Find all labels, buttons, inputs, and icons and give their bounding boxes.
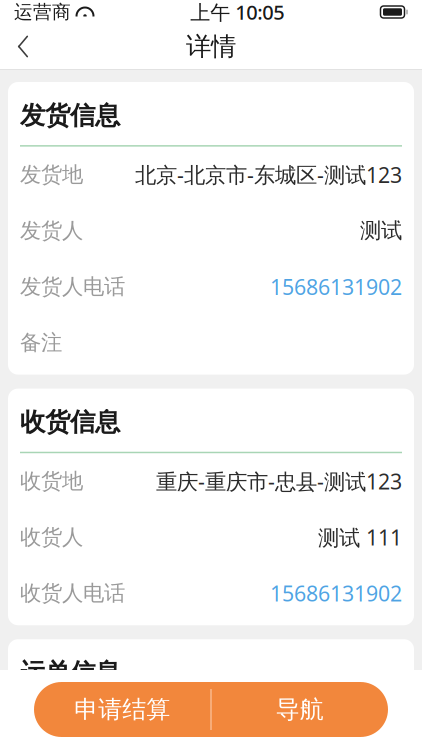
staticText: 收货信息 — [20, 407, 120, 438]
button[interactable]: 申请结算 — [34, 682, 210, 737]
staticText: 运营商 — [14, 0, 71, 23]
staticText: 北京-北京市-东城区-测试123 — [135, 160, 402, 189]
staticText: 15686131902 — [270, 579, 402, 607]
staticText: 申请结算 — [74, 695, 170, 724]
staticText: 发货人电话 — [20, 273, 125, 300]
staticText: 收货人电话 — [20, 580, 125, 606]
staticText: 发货地 — [20, 161, 83, 188]
staticText: 15686131902 — [270, 272, 402, 301]
staticText: 发货信息 — [20, 100, 120, 131]
staticText: 运单信息 — [20, 657, 120, 688]
staticText: 收货人 — [20, 524, 83, 550]
button[interactable]: 导航 — [211, 682, 388, 737]
staticText: 收货地 — [20, 468, 83, 494]
staticText: 测试 — [360, 217, 402, 244]
staticText: 上午 10:05 — [190, 0, 284, 25]
button[interactable]: 返回 — [0, 24, 46, 68]
staticText: 详情 — [186, 31, 236, 62]
staticText: 发货人 — [20, 217, 83, 244]
staticText: 导航 — [276, 695, 324, 724]
staticText: 测试 111 — [318, 523, 402, 551]
staticText: 备注 — [20, 329, 62, 356]
staticText: 重庆-重庆市-忠县-测试123 — [156, 467, 402, 495]
